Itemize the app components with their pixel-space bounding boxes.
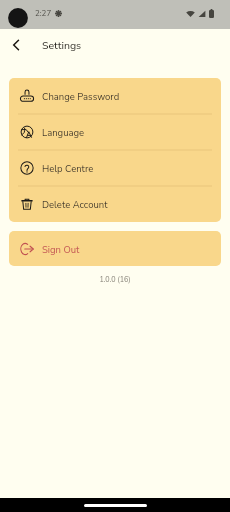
staticText: 1.0.0 (16) xyxy=(0,275,230,285)
button[interactable]: Help Centre xyxy=(9,150,221,186)
staticText: Language xyxy=(42,126,85,139)
staticText: Help Centre xyxy=(42,162,94,175)
staticText: Change Password xyxy=(42,90,120,103)
staticText: Settings xyxy=(42,38,82,52)
staticText: 2:27 xyxy=(35,8,52,19)
button[interactable]: Language xyxy=(9,114,221,150)
staticText: Sign Out xyxy=(42,243,80,256)
staticText: Delete Account xyxy=(42,198,108,211)
button[interactable]: Back xyxy=(5,34,27,56)
button[interactable]: Delete Account xyxy=(9,186,221,222)
button[interactable]: Sign Out xyxy=(9,231,221,266)
button[interactable]: Change Password xyxy=(9,78,221,114)
